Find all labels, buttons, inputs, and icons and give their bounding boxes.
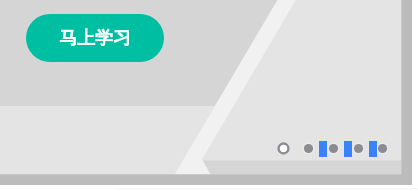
button[interactable]: Page 3	[327, 142, 340, 155]
button[interactable]: 马上学习	[26, 14, 164, 62]
button[interactable]: Current page	[276, 141, 291, 156]
button[interactable]: Page 2	[302, 142, 315, 155]
button[interactable]: Page 5	[376, 142, 389, 155]
button[interactable]: Page 4	[352, 142, 365, 155]
staticText: 马上学习	[59, 27, 131, 50]
